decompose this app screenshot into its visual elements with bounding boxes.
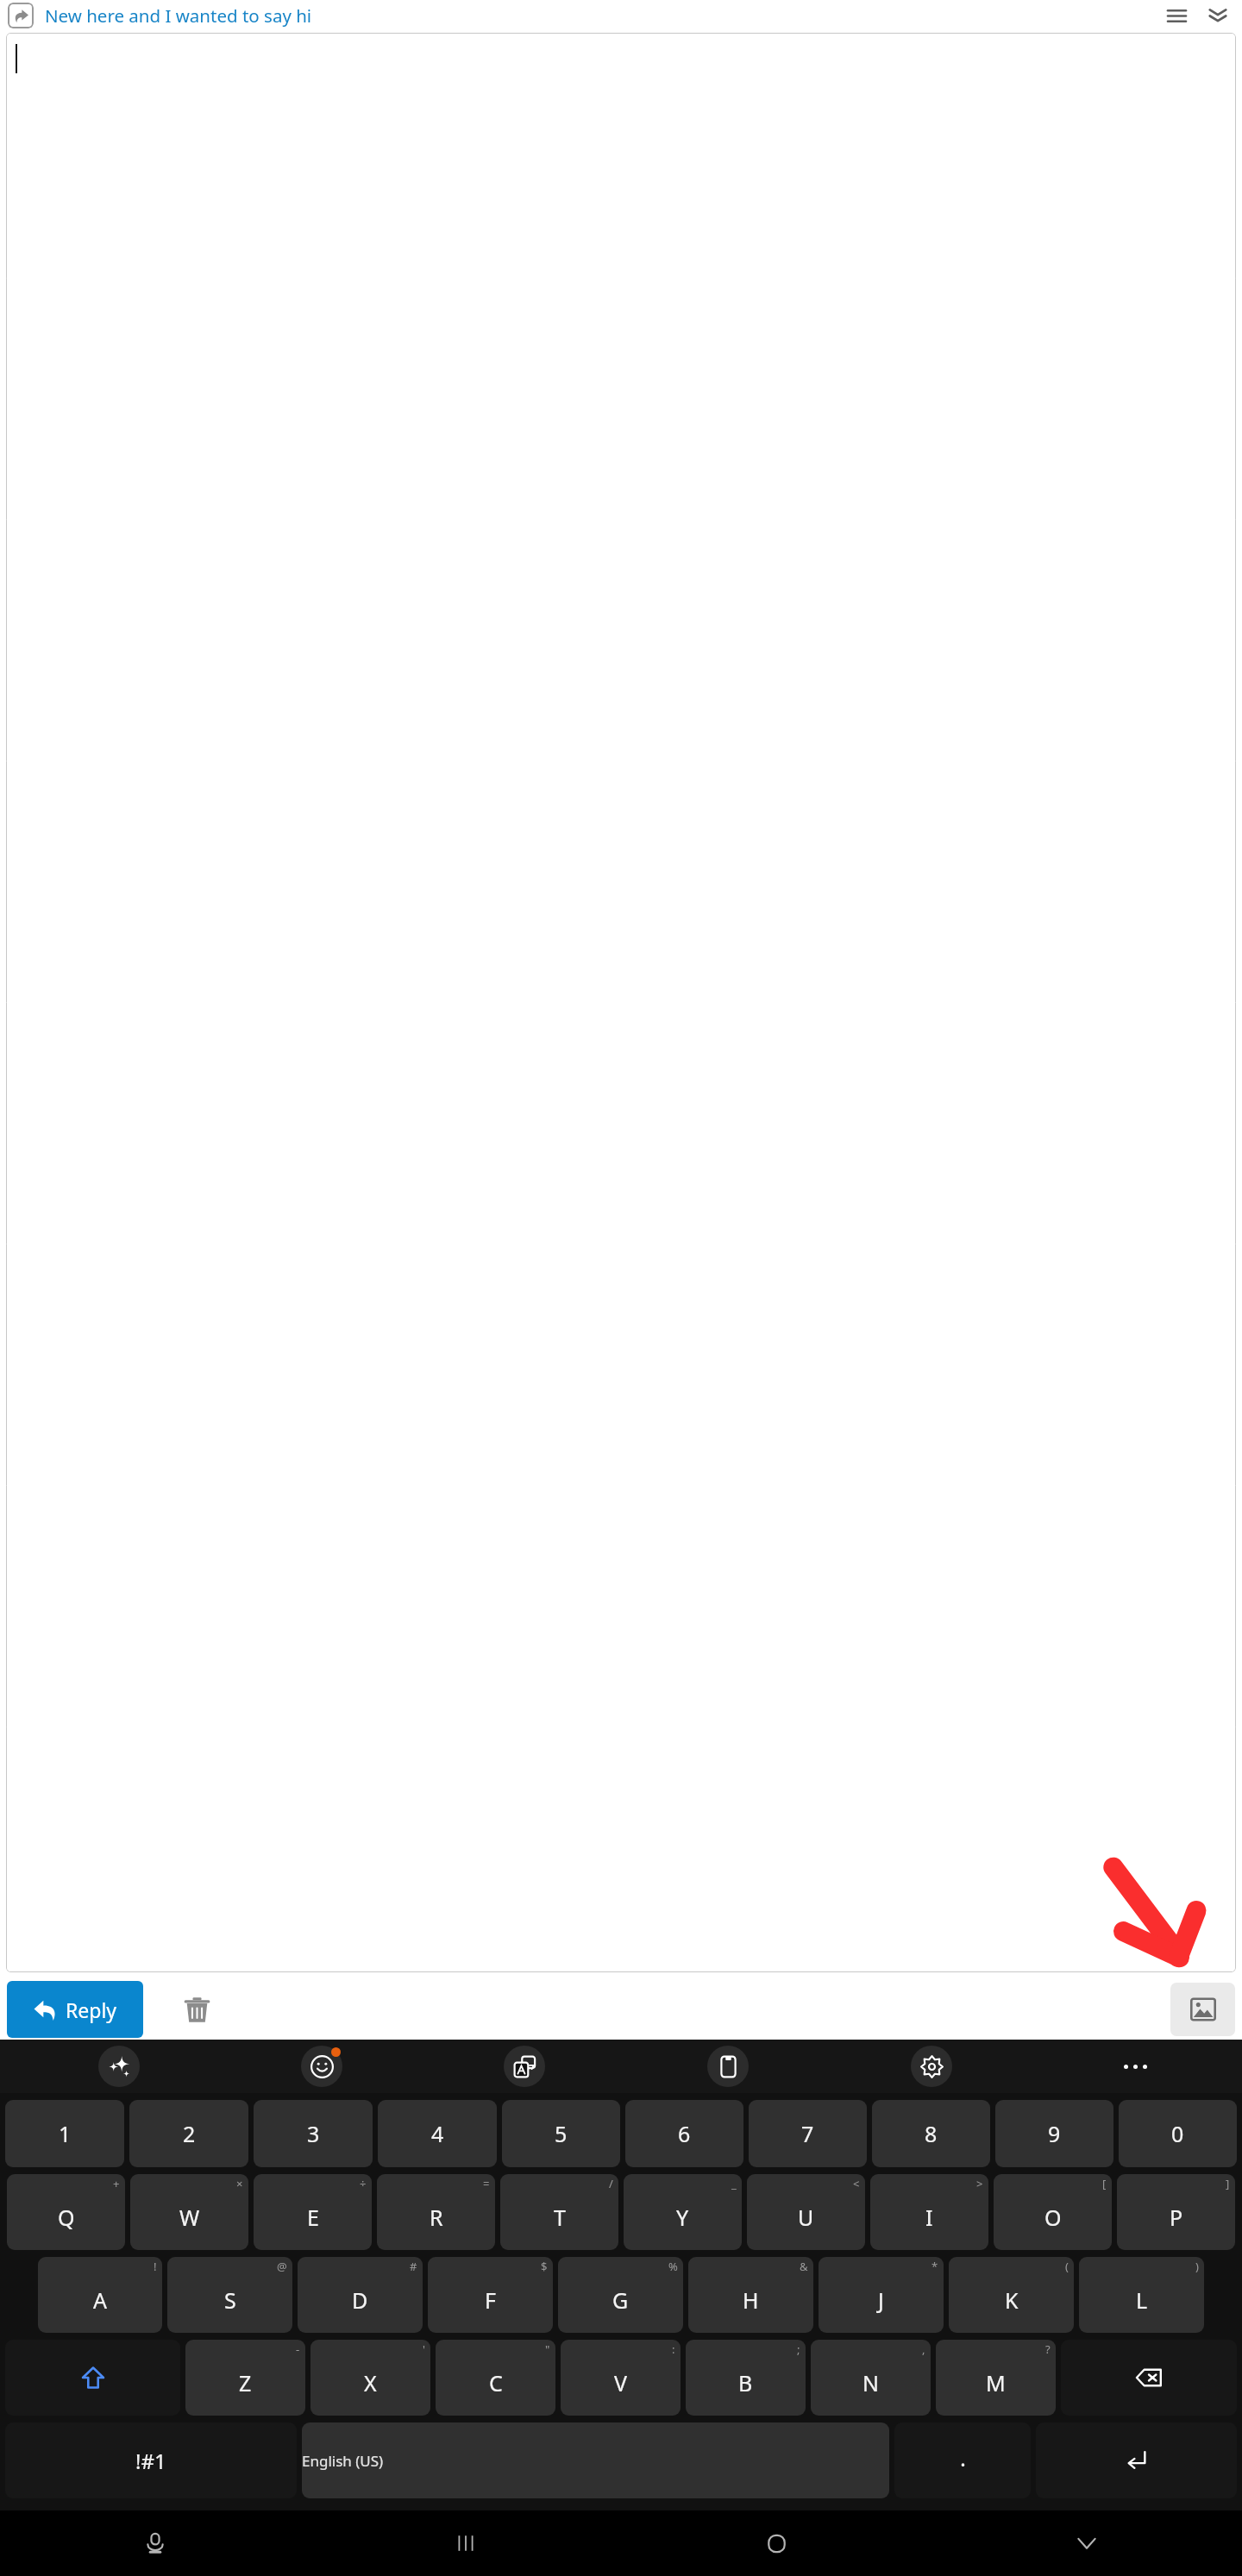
button[interactable]: Settings (830, 2040, 1033, 2093)
staticText: 4 (431, 2119, 444, 2148)
button[interactable]: = (377, 2174, 495, 2250)
staticText: 9 (1048, 2119, 1061, 2148)
button[interactable]: Clipboard (626, 2040, 830, 2093)
button[interactable]: - (185, 2340, 305, 2416)
staticText: W (179, 2203, 200, 2232)
button[interactable]: Home (621, 2510, 931, 2576)
staticText: , (922, 2341, 925, 2357)
staticText: 2 (183, 2119, 196, 2148)
staticText: X (364, 2368, 377, 2397)
staticText: : (672, 2341, 675, 2357)
button[interactable]: % (558, 2257, 683, 2333)
button[interactable]: Recent apps (310, 2510, 621, 2576)
button[interactable]: [ (994, 2174, 1112, 2250)
button[interactable]: , (811, 2340, 931, 2416)
staticText: + (113, 2176, 120, 2191)
button[interactable]: & (688, 2257, 813, 2333)
button[interactable]: ; (686, 2340, 806, 2416)
staticText: 8 (925, 2119, 938, 2148)
button[interactable]: > (870, 2174, 988, 2250)
button[interactable]: 1 (5, 2100, 124, 2167)
button[interactable]: 3 (254, 2100, 373, 2167)
staticText: O (1044, 2203, 1062, 2232)
button[interactable]: ] (1117, 2174, 1235, 2250)
button[interactable]: Delete (172, 1985, 221, 2034)
button[interactable]: Enter (1036, 2422, 1237, 2498)
button[interactable]: ) (1079, 2257, 1204, 2333)
staticText: Reply (66, 1996, 117, 2023)
staticText: < (853, 2176, 860, 2191)
button[interactable]: 4 (378, 2100, 497, 2167)
button[interactable]: 0 (1119, 2100, 1237, 2167)
staticText: ( (1065, 2259, 1069, 2274)
staticText: E (307, 2203, 319, 2232)
button[interactable]: * (819, 2257, 944, 2333)
staticText: 7 (801, 2119, 814, 2148)
button[interactable]: 5 (502, 2100, 620, 2167)
button[interactable]: 6 (625, 2100, 743, 2167)
staticText: 5 (555, 2119, 568, 2148)
staticText: A (93, 2285, 107, 2315)
staticText: F (485, 2285, 496, 2315)
button[interactable]: Period (894, 2422, 1031, 2498)
button[interactable]: 8 (872, 2100, 990, 2167)
button[interactable]: ÷ (254, 2174, 372, 2250)
button[interactable]: _ (624, 2174, 742, 2250)
button[interactable]: !#1 (5, 2422, 297, 2498)
button[interactable]: Insert image (1170, 1983, 1235, 2036)
staticText: 1 (59, 2119, 72, 2148)
button[interactable]: More options (1033, 2040, 1237, 2093)
staticText: ÷ (360, 2176, 367, 2191)
staticText: S (224, 2285, 236, 2315)
button[interactable]: : (561, 2340, 681, 2416)
button[interactable]: Translate (423, 2040, 626, 2093)
button[interactable]: Hide keyboard (931, 2510, 1242, 2576)
staticText: = (483, 2176, 490, 2191)
staticText: $ (541, 2259, 548, 2274)
staticText: # (410, 2259, 417, 2274)
button[interactable]: Reply (7, 1981, 143, 2038)
button[interactable]: ! (38, 2257, 162, 2333)
button[interactable]: # (298, 2257, 423, 2333)
staticText: - (296, 2341, 300, 2357)
staticText: . (960, 2442, 966, 2473)
button[interactable]: AI suggestions (17, 2040, 220, 2093)
button[interactable]: $ (428, 2257, 553, 2333)
button[interactable]: " (436, 2340, 555, 2416)
staticText: K (1005, 2285, 1019, 2315)
staticText: @ (277, 2259, 287, 2274)
button[interactable]: < (747, 2174, 865, 2250)
button[interactable]: Emoji (220, 2040, 423, 2093)
button[interactable]: @ (167, 2257, 292, 2333)
button[interactable]: ( (949, 2257, 1074, 2333)
button[interactable]: Shift (5, 2340, 180, 2416)
button[interactable]: 2 (129, 2100, 248, 2167)
staticText: Y (676, 2203, 689, 2232)
button[interactable]: Backspace (1061, 2340, 1237, 2416)
button[interactable]: Forward (8, 3, 34, 28)
button[interactable]: × (130, 2174, 248, 2250)
button[interactable] (6, 33, 1236, 1972)
staticText: & (800, 2259, 808, 2274)
button[interactable]: Voice input (0, 2510, 310, 2576)
button[interactable]: Collapse (1199, 0, 1237, 31)
staticText: ? (1045, 2341, 1051, 2357)
button[interactable]: 7 (749, 2100, 867, 2167)
staticText: C (489, 2368, 503, 2397)
staticText: L (1136, 2285, 1148, 2315)
button[interactable]: + (7, 2174, 125, 2250)
button[interactable]: English (US) (302, 2422, 889, 2498)
staticText: B (738, 2368, 753, 2397)
staticText: H (743, 2285, 759, 2315)
button[interactable]: ? (936, 2340, 1056, 2416)
staticText: !#1 (135, 2447, 166, 2475)
staticText: > (976, 2176, 983, 2191)
staticText: R (430, 2203, 443, 2232)
button[interactable]: ' (310, 2340, 430, 2416)
button[interactable]: / (500, 2174, 618, 2250)
button[interactable]: 9 (995, 2100, 1113, 2167)
staticText: Q (58, 2203, 75, 2232)
button[interactable]: Menu (1157, 0, 1195, 31)
staticText: ] (1226, 2176, 1230, 2191)
staticText: D (352, 2285, 368, 2315)
